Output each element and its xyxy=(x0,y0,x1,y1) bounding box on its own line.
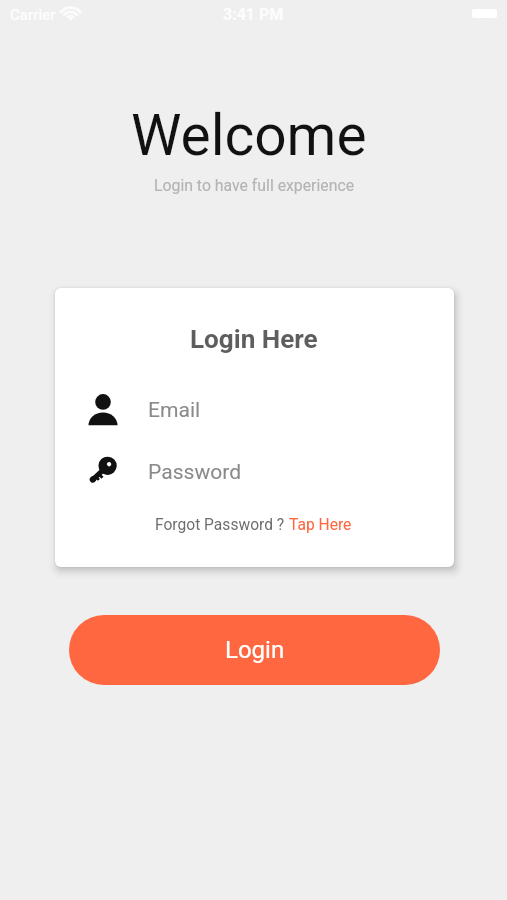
staticText: Login Here xyxy=(190,324,318,355)
other: Wi-Fi signal xyxy=(61,6,80,20)
other: Email account icon xyxy=(88,394,118,424)
staticText: Carrier xyxy=(10,6,56,24)
staticText: 3:41 PM xyxy=(223,5,284,24)
button[interactable]: Tap Here xyxy=(289,514,352,536)
staticText: Forgot Password ? xyxy=(155,516,289,534)
button[interactable]: Login xyxy=(69,615,440,685)
other: Password key icon xyxy=(87,456,117,486)
staticText: Tap Here xyxy=(289,516,352,534)
staticText: Password xyxy=(148,459,242,484)
staticText: Login to have full experience xyxy=(154,176,355,195)
staticText: Login xyxy=(225,636,285,664)
button[interactable]: Email account icon xyxy=(55,391,454,427)
staticText: Welcome xyxy=(131,102,367,169)
staticText: Email xyxy=(148,397,201,422)
button[interactable]: Password key icon xyxy=(55,453,454,489)
